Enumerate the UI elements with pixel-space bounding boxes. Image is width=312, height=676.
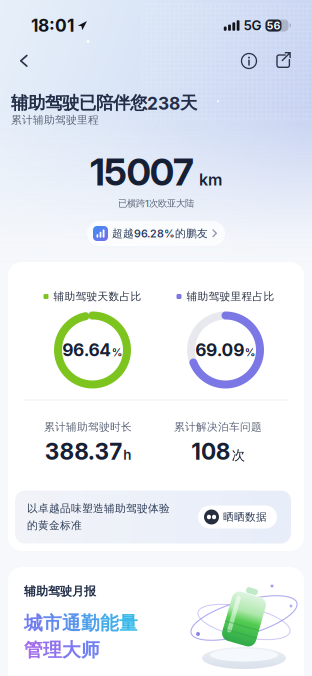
staticText: 次 <box>232 447 245 463</box>
staticText: 累计辅助驾驶时长 <box>44 420 132 433</box>
staticText: 辅助驾驶里程占比 <box>186 290 274 303</box>
staticText: 以卓越品味塑造辅助驾驶体验 <box>27 502 170 515</box>
staticText: 辅助驾驶已陪伴您238天 <box>11 92 197 114</box>
staticText: 5G <box>243 18 261 33</box>
button[interactable]: 晒晒数据 <box>198 505 277 528</box>
staticText: 管 <box>24 639 43 662</box>
staticText: % <box>112 346 123 359</box>
button[interactable]: Back <box>8 43 40 79</box>
staticText: 累计解决泊车问题 <box>174 420 262 433</box>
button[interactable]: 辅助驾驶月报 <box>8 567 304 676</box>
staticText: 勤 <box>81 612 100 635</box>
staticText: 15007 <box>90 150 194 194</box>
staticText: 超越96.28%的鹏友 <box>112 227 208 240</box>
staticText: 量 <box>119 612 138 635</box>
staticText: 69.09 <box>195 340 244 360</box>
button[interactable]: Share <box>268 43 298 79</box>
staticText: h <box>123 447 131 463</box>
staticText: 晒晒数据 <box>223 510 267 523</box>
staticText: 城 <box>24 612 43 635</box>
staticText: km <box>199 170 222 189</box>
staticText: 96.64 <box>62 340 111 360</box>
staticText: 388.37 <box>45 438 122 465</box>
staticText: 108 <box>191 438 231 465</box>
staticText: 师 <box>81 639 100 662</box>
staticText: 能 <box>100 612 119 635</box>
staticText: 理 <box>43 639 62 662</box>
staticText: 辅助驾驶天数占比 <box>53 290 141 303</box>
staticText: 56 <box>266 19 280 32</box>
staticText: 大 <box>62 639 81 662</box>
button[interactable]: Info <box>234 43 264 79</box>
staticText: 通 <box>62 612 81 635</box>
staticText: 18:01 <box>31 15 74 36</box>
staticText: 的黄金标准 <box>27 519 82 532</box>
staticText: 已横跨1次欧亚大陆 <box>118 198 194 209</box>
staticText: 累计辅助驾驶里程 <box>11 113 99 126</box>
button[interactable]: 超越96.28%的鹏友 <box>87 221 225 246</box>
staticText: % <box>245 346 256 359</box>
staticText: 市 <box>43 612 62 635</box>
staticText: 辅助驾驶月报 <box>24 584 96 599</box>
